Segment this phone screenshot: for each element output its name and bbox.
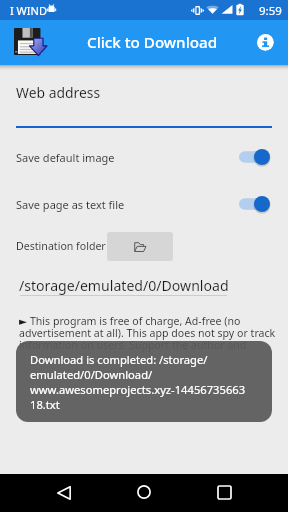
staticText: 9:59 [259,3,282,19]
button[interactable]: Save page as text file [0,192,288,216]
staticText: /storage/emulated/0/Download [19,276,229,295]
staticText: Save default image [16,150,115,165]
staticText: Web address [16,83,101,102]
button[interactable]: Choose destination folder [107,232,173,261]
staticText: Destination folder [16,239,106,253]
button[interactable]: Info [256,33,274,51]
button[interactable]: Home [130,478,158,506]
staticText: Save page as text file [16,197,125,212]
button[interactable]: Save default image [0,145,288,169]
staticText: I WIND [10,3,47,18]
staticText: ► This program is free of charge, Ad-fre… [19,314,281,352]
button[interactable]: Recent apps [210,478,238,506]
staticText: Download is completed: /storage/ emulate… [30,352,246,412]
staticText: Click to Download [87,32,218,53]
button[interactable]: Back [50,479,78,507]
button[interactable]: Save [14,28,47,55]
